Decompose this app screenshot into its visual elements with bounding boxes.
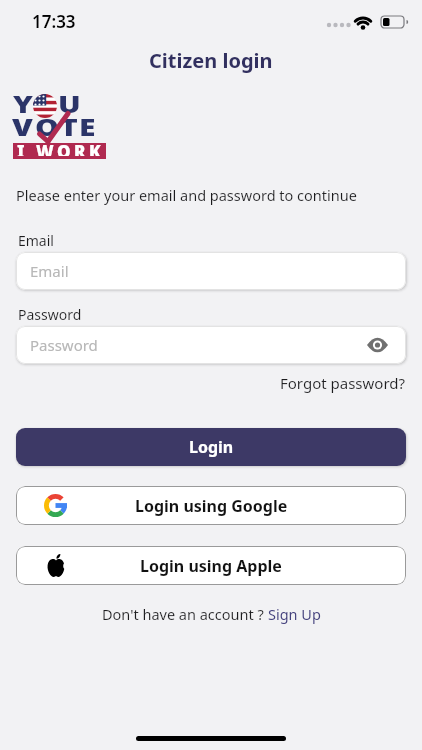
staticText: O bbox=[35, 111, 59, 143]
staticText: Login using Google bbox=[135, 495, 288, 517]
staticText: Citizen login bbox=[149, 47, 273, 74]
staticText: V bbox=[12, 111, 33, 143]
button[interactable]: Password bbox=[16, 326, 406, 364]
staticText: Please enter your email and password to … bbox=[16, 185, 357, 205]
staticText: Y bbox=[13, 88, 33, 120]
staticText: Email bbox=[30, 261, 69, 281]
staticText: Email bbox=[18, 231, 54, 250]
button[interactable]: Email bbox=[16, 252, 406, 290]
staticText: Password bbox=[30, 335, 98, 355]
button[interactable]: Sign Up bbox=[268, 604, 321, 624]
staticText: 17:33 bbox=[32, 10, 76, 33]
staticText: I WORK bbox=[17, 140, 105, 156]
button[interactable]: Login using Apple bbox=[16, 546, 406, 585]
staticText: T bbox=[60, 111, 78, 143]
staticText: Login using Apple bbox=[140, 555, 282, 577]
staticText: Login bbox=[189, 436, 234, 458]
staticText: E bbox=[79, 111, 96, 143]
button[interactable]: Forgot password? bbox=[280, 373, 406, 393]
staticText: Don't have an account ? bbox=[102, 604, 268, 624]
button[interactable]: Login bbox=[16, 428, 406, 466]
staticText: U bbox=[58, 88, 81, 120]
button[interactable]: Login using Google bbox=[16, 486, 406, 525]
staticText: Password bbox=[18, 305, 82, 324]
